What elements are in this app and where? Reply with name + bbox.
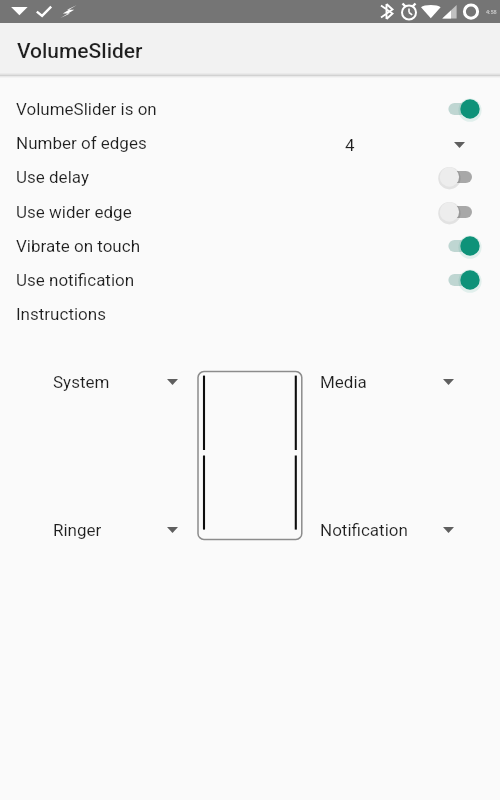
staticText: 4 [345, 135, 355, 155]
button[interactable]: System [53, 370, 110, 393]
staticText: Vibrate on touch [16, 236, 140, 256]
button[interactable]: Open System menu [167, 379, 178, 385]
other: Toggle on [437, 267, 483, 293]
staticText: Use wider edge [16, 202, 132, 222]
staticText: VolumeSlider [17, 39, 143, 64]
other: Toggle on [437, 233, 483, 259]
staticText: 4:58 [486, 9, 497, 15]
other: Toggle off [437, 199, 483, 225]
button[interactable]: Use wider edge [0, 194, 500, 229]
button[interactable]: Choose Number of edges [454, 142, 465, 148]
button[interactable]: Number of edges [0, 125, 500, 160]
button[interactable]: Open Notification menu [443, 527, 454, 533]
staticText: Notification [320, 520, 408, 540]
button[interactable]: Media [320, 370, 367, 393]
button[interactable]: Open Media menu [443, 379, 454, 385]
button[interactable]: Vibrate on touch [0, 228, 500, 263]
staticText: Ringer [53, 520, 102, 540]
staticText: Use delay [16, 167, 89, 187]
button[interactable]: Notification [320, 518, 408, 541]
staticText: Instructions [16, 304, 106, 324]
button[interactable]: Instructions [0, 296, 500, 331]
button[interactable]: Open Ringer menu [167, 527, 178, 533]
other: Toggle on [437, 96, 483, 122]
staticText: System [53, 372, 110, 392]
staticText: Use notification [16, 270, 135, 290]
other: Toggle off [437, 164, 483, 190]
button[interactable]: Use notification [0, 262, 500, 297]
staticText: VolumeSlider is on [16, 99, 157, 119]
staticText: Media [320, 372, 367, 392]
staticText: Number of edges [16, 133, 147, 153]
button[interactable]: Ringer [53, 518, 102, 541]
button[interactable]: VolumeSlider is on [0, 91, 500, 126]
button[interactable]: Use delay [0, 159, 500, 194]
